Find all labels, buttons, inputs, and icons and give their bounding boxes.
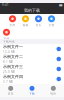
staticText: 示例文件四 — [3, 74, 23, 79]
staticText: 视频 — [22, 23, 28, 27]
staticText: 9:41 — [2, 3, 9, 7]
staticText: 示例文件三 — [3, 64, 23, 69]
button[interactable]: 下载 — [21, 84, 43, 97]
staticText: 示例文件一 — [3, 44, 23, 49]
button[interactable]: 视频 — [19, 15, 32, 27]
staticText: 音乐 — [35, 23, 41, 27]
button[interactable]: 音乐 — [32, 15, 45, 27]
staticText: 我的 — [50, 92, 56, 95]
button[interactable]: 示例文件二 — [0, 54, 64, 64]
button[interactable]: 其他 — [0, 29, 13, 40]
staticText: 我的下载 — [24, 8, 40, 13]
button[interactable]: 全部 — [6, 15, 19, 27]
staticText: 8.1 MB — [3, 60, 13, 64]
staticText: ▮▮▮ — [59, 3, 62, 6]
staticText: 下载列表 — [3, 40, 15, 43]
staticText: 全部 — [9, 23, 15, 27]
staticText: 25.0 MB — [3, 70, 15, 74]
button[interactable]: 示例文件三 — [0, 64, 64, 74]
staticText: 其他 — [3, 37, 9, 40]
button[interactable]: 示例文件一 — [0, 44, 64, 54]
button[interactable]: 文档 — [45, 15, 58, 27]
staticText: 文档 — [48, 23, 54, 27]
button[interactable]: 我的 — [43, 84, 64, 97]
staticText: 下载 — [29, 92, 35, 95]
button[interactable]: 首页 — [0, 84, 21, 97]
staticText: 12.4 MB — [3, 50, 15, 54]
staticText: 首页 — [8, 92, 14, 95]
staticText: 示例文件二 — [3, 54, 23, 59]
staticText: 3.7 MB — [3, 80, 13, 84]
button[interactable]: 示例文件四 — [0, 74, 64, 84]
